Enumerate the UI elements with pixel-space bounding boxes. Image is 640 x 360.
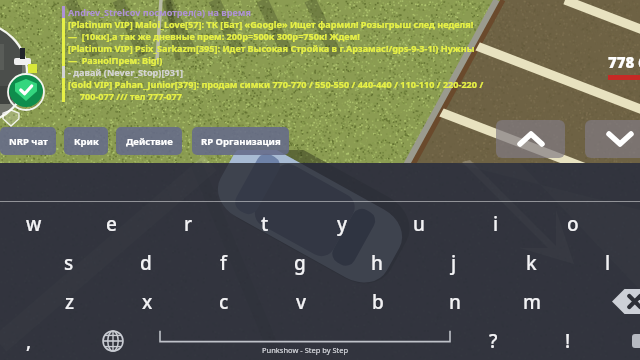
staticText: - давай (Never_Stop)[931] — [68, 66, 184, 78]
staticText: — Разно!Прем: Big!) — [68, 54, 163, 66]
staticText: — [10кк],а так же дневные прем: 200р=500… — [68, 30, 360, 42]
staticText: [Platinum VIP] Psix_Sarkazm[395]: Идет В… — [68, 42, 475, 54]
staticText: v — [296, 289, 307, 315]
button[interactable]: u — [381, 205, 457, 243]
button[interactable]: Change language — [94, 322, 132, 360]
button[interactable]: NRP чат — [0, 127, 56, 155]
staticText: NRP чат — [9, 135, 48, 148]
staticText: ? — [489, 328, 498, 354]
button[interactable]: j — [416, 244, 492, 282]
button[interactable]: s — [31, 244, 107, 282]
staticText: c — [219, 289, 229, 315]
button[interactable]: ? — [455, 322, 531, 360]
staticText: , — [26, 328, 32, 354]
button[interactable]: ! — [530, 322, 606, 360]
staticText: o — [567, 211, 579, 237]
staticText: u — [413, 211, 425, 237]
button[interactable]: l — [570, 244, 640, 282]
staticText: s — [64, 250, 74, 276]
staticText: [Platinum VIP] Maloi_Love[57]: ТК [Бат] … — [68, 18, 474, 30]
button[interactable]: d — [108, 244, 184, 282]
button[interactable]: Backspace — [594, 284, 640, 320]
button[interactable]: z — [32, 283, 108, 321]
staticText: [Gold VIP] Pahan_Junior[379]: продам сим… — [68, 78, 484, 90]
staticText: h — [371, 250, 383, 276]
staticText: x — [142, 289, 153, 315]
staticText: m — [523, 289, 541, 315]
button[interactable]: k — [493, 244, 569, 282]
button[interactable]: Verified account — [9, 73, 43, 107]
staticText: z — [65, 289, 75, 315]
staticText: t — [261, 211, 269, 237]
staticText: d — [140, 250, 152, 276]
button[interactable]: t — [227, 205, 303, 243]
staticText: n — [449, 289, 461, 315]
button[interactable]: Scroll chat up — [496, 120, 565, 158]
staticText: j — [451, 250, 457, 276]
button[interactable]: Действие — [116, 127, 182, 155]
button[interactable]: v — [263, 283, 339, 321]
staticText: l — [605, 250, 611, 276]
staticText: w — [26, 211, 42, 237]
button[interactable]: e — [73, 205, 149, 243]
button[interactable]: n — [417, 283, 493, 321]
staticText: g — [294, 250, 306, 276]
button[interactable]: Крик — [64, 127, 108, 155]
staticText: ! — [565, 328, 571, 354]
button[interactable]: y — [304, 205, 380, 243]
staticText: Andrev_Strelcov посмотрел(а) на время — [68, 6, 251, 18]
button[interactable]: f — [185, 244, 261, 282]
staticText: e — [106, 211, 117, 237]
button[interactable]: o — [535, 205, 611, 243]
staticText: i — [493, 211, 499, 237]
button[interactable]: w — [0, 205, 72, 243]
staticText: 778 6 — [608, 52, 640, 72]
button[interactable]: h — [339, 244, 415, 282]
staticText: b — [372, 289, 384, 315]
button[interactable]: r — [150, 205, 226, 243]
button[interactable]: g — [262, 244, 338, 282]
button[interactable]: , — [0, 322, 67, 360]
staticText: y — [337, 211, 348, 237]
button[interactable]: c — [186, 283, 262, 321]
button[interactable]: i — [458, 205, 534, 243]
staticText: RP Организация — [201, 135, 281, 148]
button[interactable]: Enter — [632, 334, 640, 348]
button[interactable]: Scroll chat down — [585, 120, 640, 158]
button[interactable]: Punkshow - Step by Step — [159, 325, 451, 357]
staticText: f — [220, 250, 227, 276]
button[interactable]: m — [494, 283, 570, 321]
button[interactable]: x — [109, 283, 185, 321]
button[interactable]: b — [340, 283, 416, 321]
staticText: k — [526, 250, 537, 276]
staticText: Крик — [74, 135, 99, 148]
button[interactable]: RP Организация — [192, 127, 289, 155]
staticText: r — [184, 211, 193, 237]
staticText: Punkshow - Step by Step — [262, 345, 349, 355]
staticText: Действие — [126, 135, 173, 148]
staticText: 700-077 /// тел 777-077 — [68, 90, 182, 102]
